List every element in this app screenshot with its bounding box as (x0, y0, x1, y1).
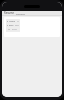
staticText: Yr (8, 28, 11, 31)
button[interactable]: Name (6, 19, 20, 32)
staticText: Dev (15, 24, 19, 27)
button[interactable]: Resume (2, 11, 62, 15)
staticText: 2024 (12, 28, 17, 31)
button[interactable]: Name (7, 20, 19, 23)
button[interactable]: Name (4, 17, 60, 37)
staticText: Alex (17, 20, 19, 23)
staticText: Role (9, 24, 14, 27)
staticText: settings (16, 12, 25, 15)
staticText: Resume (4, 11, 14, 15)
staticText: Name (9, 20, 16, 23)
button[interactable]: Yr (7, 28, 19, 31)
button[interactable]: Role (7, 24, 19, 27)
